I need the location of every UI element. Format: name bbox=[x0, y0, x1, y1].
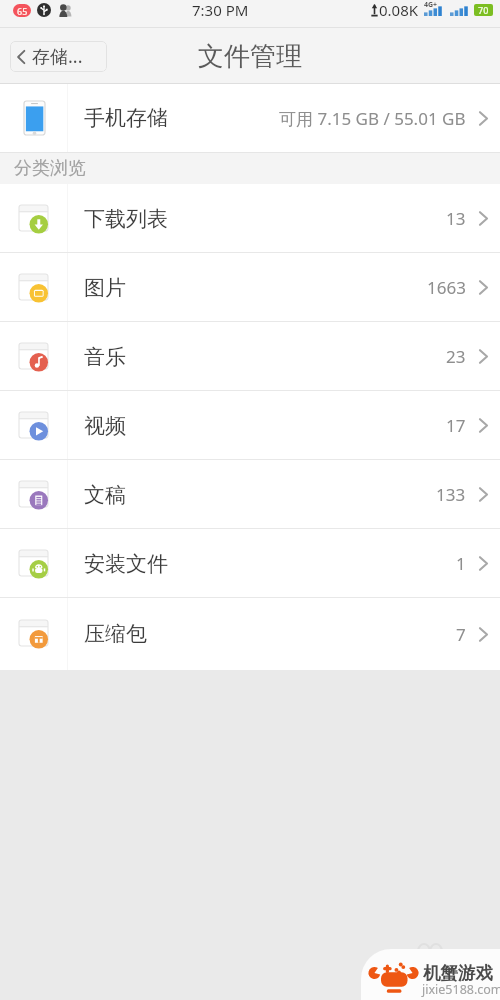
button[interactable]: 安装文件 bbox=[0, 529, 500, 598]
staticText: 7:30 PM bbox=[192, 0, 249, 20]
staticText: 65 bbox=[17, 5, 28, 17]
staticText: 17 bbox=[446, 414, 466, 437]
staticText: 手机存储 bbox=[84, 105, 168, 131]
staticText: 安装文件 bbox=[84, 551, 168, 577]
staticText: 133 bbox=[436, 483, 466, 506]
staticText: 图片 bbox=[84, 275, 126, 301]
button[interactable]: 压缩包 bbox=[0, 598, 500, 670]
staticText: 70 bbox=[478, 4, 489, 16]
staticText: 文稿 bbox=[84, 482, 126, 508]
staticText: 机蟹游戏 bbox=[423, 962, 493, 984]
button[interactable]: 下载列表 bbox=[0, 184, 500, 253]
staticText: 下载列表 bbox=[84, 206, 168, 232]
staticText: 7 bbox=[456, 623, 466, 646]
button[interactable]: 返回 存储 bbox=[10, 41, 107, 72]
button[interactable]: 音乐 bbox=[0, 322, 500, 391]
staticText: 1 bbox=[456, 552, 466, 575]
staticText: 可用 7.15 GB / 55.01 GB bbox=[279, 107, 466, 130]
staticText: 13 bbox=[446, 207, 466, 230]
staticText: 压缩包 bbox=[84, 621, 147, 647]
staticText: 文件管理 bbox=[198, 40, 302, 73]
button[interactable]: 文稿 bbox=[0, 460, 500, 529]
button[interactable]: 手机存储 bbox=[0, 84, 500, 152]
staticText: 视频 bbox=[84, 413, 126, 439]
staticText: 23 bbox=[446, 345, 466, 368]
button[interactable]: 图片 bbox=[0, 253, 500, 322]
button[interactable]: 视频 bbox=[0, 391, 500, 460]
staticText: jixie5188.com bbox=[422, 981, 500, 998]
staticText: 分类浏览 bbox=[14, 157, 86, 180]
staticText: 0.08K bbox=[379, 0, 419, 20]
staticText: 4G+ bbox=[424, 0, 438, 10]
staticText: 存储... bbox=[32, 44, 83, 69]
staticText: 1663 bbox=[427, 276, 466, 299]
staticText: 音乐 bbox=[84, 344, 126, 370]
